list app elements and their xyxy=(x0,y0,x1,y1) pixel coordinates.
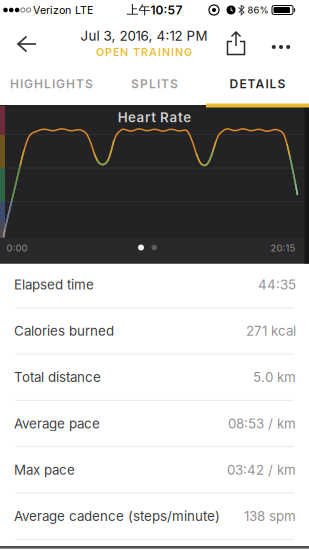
staticText: Max pace xyxy=(14,462,75,478)
button[interactable]: SPLITS xyxy=(103,62,206,106)
staticText: Average cadence (steps/minute) xyxy=(14,508,220,524)
staticText: 03:42 / km xyxy=(227,462,296,478)
staticText: Verizon xyxy=(33,4,71,16)
staticText: 上午10:57 xyxy=(126,3,182,17)
staticText: 5.0 km xyxy=(253,369,296,385)
staticText: 08:53 / km xyxy=(228,416,296,431)
staticText: OPEN TRAINING xyxy=(96,46,192,58)
staticText: 86% xyxy=(247,4,268,15)
staticText: Total distance xyxy=(14,369,101,385)
button[interactable]: More xyxy=(259,25,303,69)
staticText: LTE xyxy=(75,4,93,16)
staticText: Average pace xyxy=(14,416,100,431)
button[interactable]: DETAILS xyxy=(206,62,309,106)
staticText: SPLITS xyxy=(131,77,178,91)
staticText: Elapsed time xyxy=(14,277,94,292)
staticText: 44:35 xyxy=(258,277,296,292)
staticText: Heart Rate xyxy=(118,110,191,125)
button[interactable]: HIGHLIGHTS xyxy=(0,62,103,106)
button[interactable]: Share xyxy=(214,20,258,64)
staticText: Calories burned xyxy=(14,323,114,339)
staticText: 138 spm xyxy=(244,508,296,524)
button[interactable]: Back xyxy=(13,20,57,64)
staticText: Jul 3, 2016, 4:12 PM xyxy=(80,28,207,44)
staticText: 0:00 xyxy=(6,242,27,253)
staticText: DETAILS xyxy=(229,77,285,91)
staticText: HIGHLIGHTS xyxy=(10,77,93,91)
staticText: 20:15 xyxy=(270,242,295,253)
staticText: 271 kcal xyxy=(246,323,296,339)
